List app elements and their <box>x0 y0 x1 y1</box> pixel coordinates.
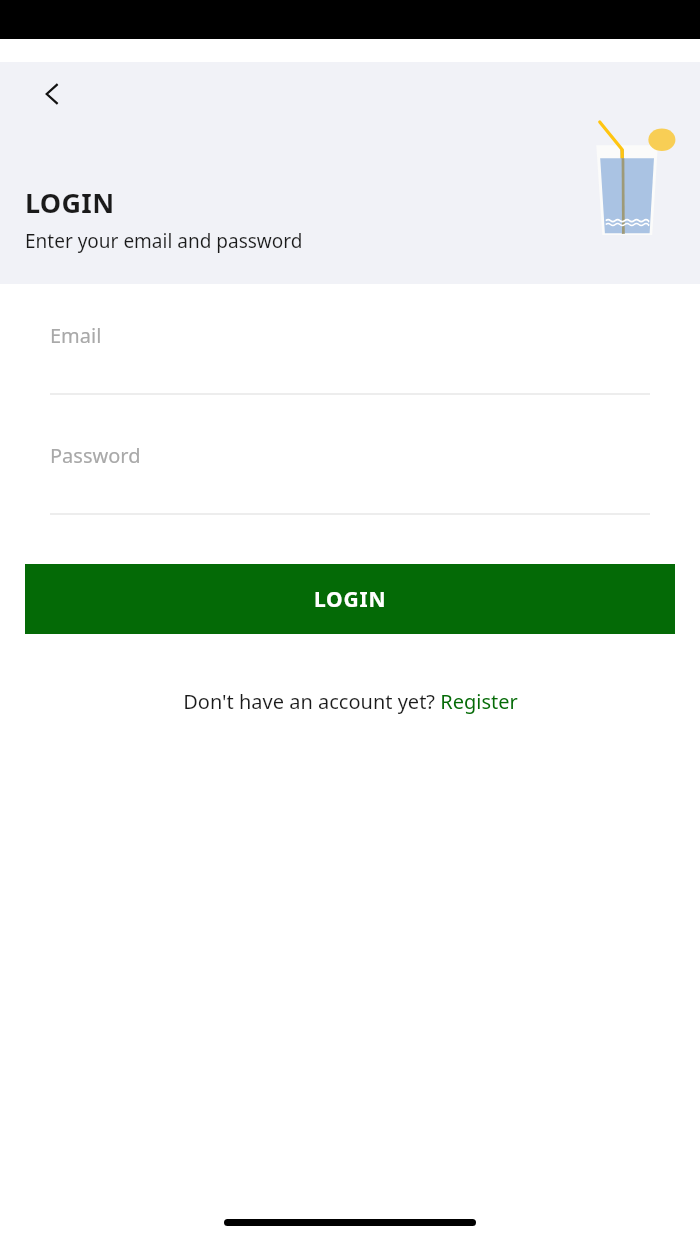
button[interactable]: Email <box>50 322 650 395</box>
staticText: Password <box>50 442 141 469</box>
button[interactable]: Password <box>50 442 650 515</box>
staticText: Don't have an account yet? Register <box>183 688 518 715</box>
button[interactable]: Don't have an account yet? Register <box>0 688 700 715</box>
staticText: LOGIN <box>314 585 387 614</box>
button[interactable]: LOGIN <box>25 564 675 634</box>
staticText: Email <box>50 322 102 349</box>
button[interactable]: Back <box>31 73 73 115</box>
staticText: LOGIN <box>25 184 115 221</box>
staticText: Enter your email and password <box>25 228 303 254</box>
